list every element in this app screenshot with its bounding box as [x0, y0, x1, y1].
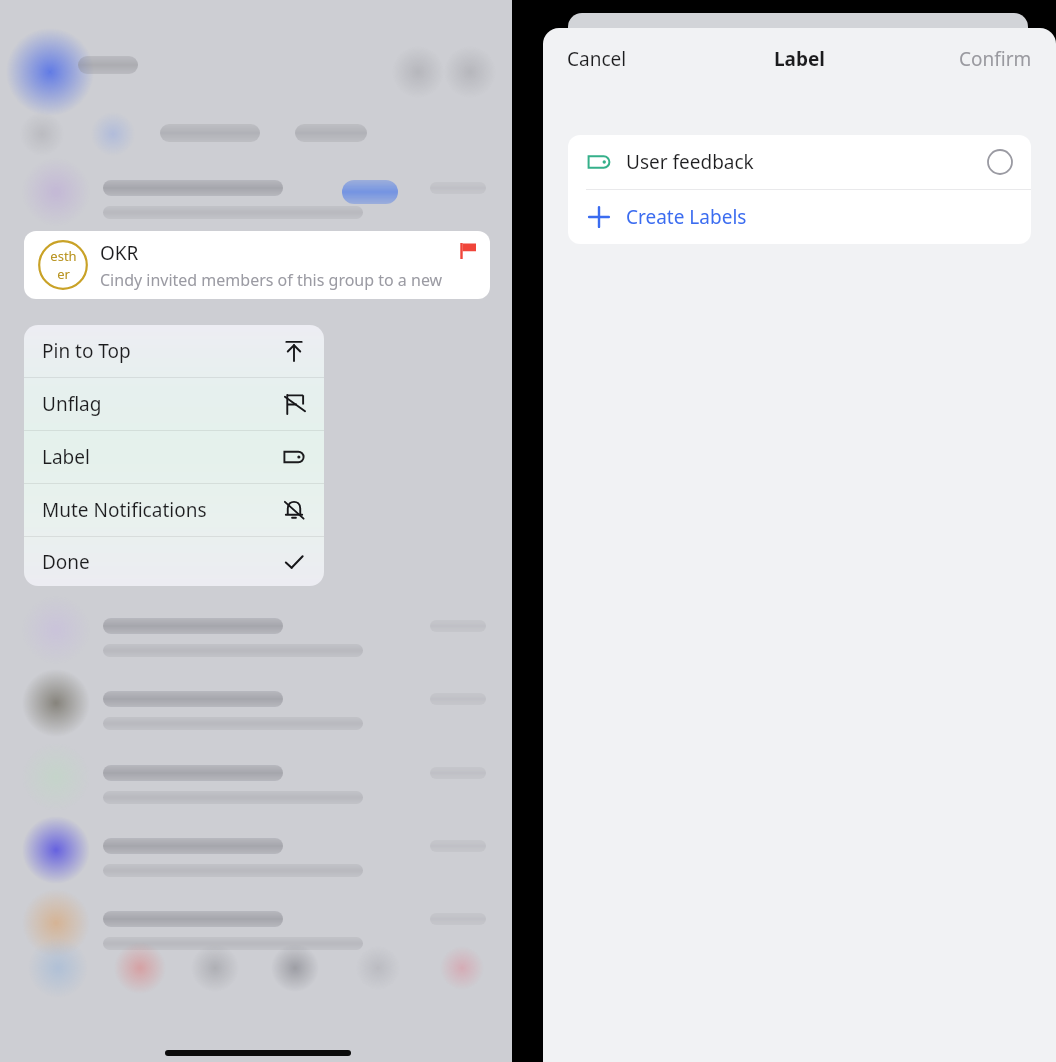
staticText: Mute Notifications	[42, 497, 207, 523]
staticText: Create Labels	[626, 204, 747, 230]
button[interactable]: Unflag	[24, 378, 324, 430]
staticText: Unflag	[42, 391, 102, 417]
button[interactable]: Label	[24, 431, 324, 483]
staticText: Pin to Top	[42, 338, 131, 364]
button[interactable]: Create Labels	[568, 190, 1031, 244]
staticText: er	[57, 265, 70, 283]
staticText: Label	[42, 444, 90, 470]
staticText: Label	[774, 46, 826, 72]
staticText: Cancel	[567, 46, 627, 72]
staticText: Cindy invited members of this group to a…	[100, 269, 476, 291]
staticText: User feedback	[626, 149, 754, 175]
button[interactable]: User feedback	[568, 135, 1031, 189]
button[interactable]: Mute Notifications	[24, 484, 324, 536]
button[interactable]: Confirm	[945, 40, 1046, 78]
button[interactable]: esth	[24, 231, 490, 299]
button[interactable]: Done	[24, 537, 324, 586]
button[interactable]: Cancel	[553, 40, 641, 78]
staticText: Confirm	[959, 46, 1032, 72]
staticText: Done	[42, 549, 90, 575]
staticText: OKR	[100, 240, 139, 266]
staticText: esth	[50, 247, 77, 265]
button[interactable]: Pin to Top	[24, 325, 324, 377]
